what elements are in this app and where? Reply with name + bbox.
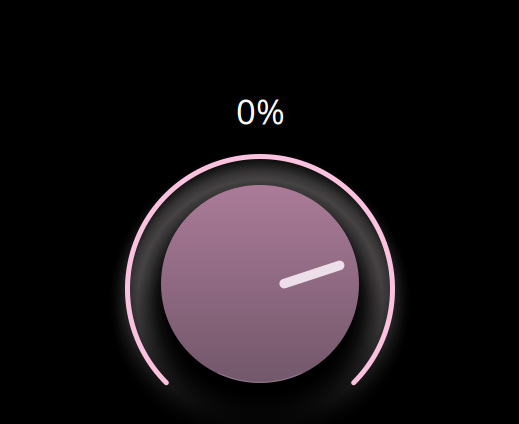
- staticText: 0%: [236, 88, 285, 134]
- button[interactable]: Volume knob, 0 percent: [0, 0, 519, 424]
